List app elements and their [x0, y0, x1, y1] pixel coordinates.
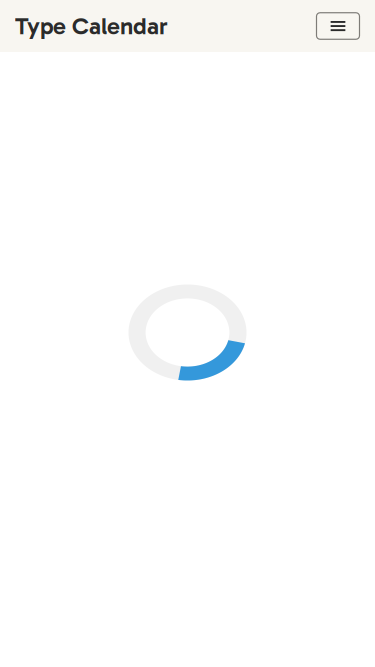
button[interactable]: Menu [316, 13, 359, 39]
staticText: Type Calendar [15, 12, 168, 40]
